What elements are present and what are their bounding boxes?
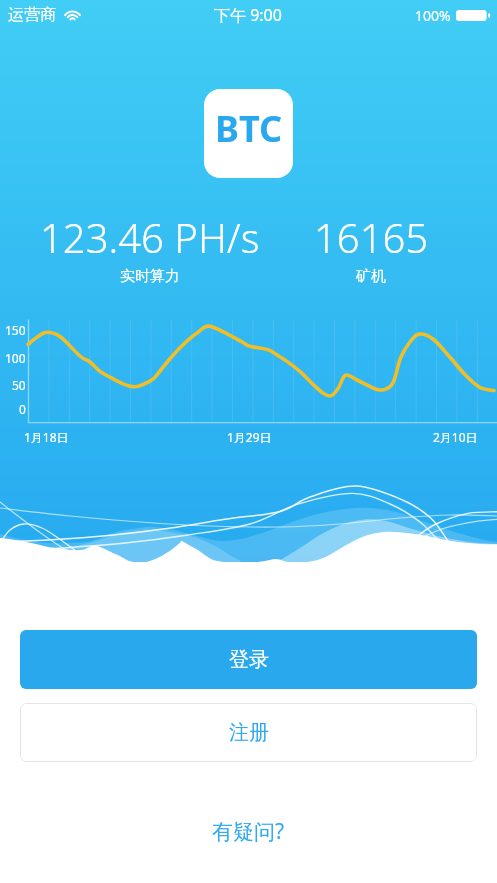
staticText: 有疑问? — [212, 817, 285, 846]
button[interactable]: 登录 — [20, 630, 477, 689]
staticText: 100 — [5, 350, 26, 366]
staticText: 50 — [12, 377, 26, 393]
staticText: 16165 — [314, 210, 429, 264]
staticText: 运营商 — [8, 5, 56, 25]
staticText: 2月10日 — [433, 429, 478, 445]
staticText: 矿机 — [356, 267, 386, 286]
button[interactable]: 有疑问? — [200, 811, 297, 852]
staticText: 100% — [415, 6, 451, 25]
staticText: 1月18日 — [24, 429, 69, 445]
staticText: 0 — [19, 401, 26, 417]
staticText: 1月29日 — [227, 429, 272, 445]
staticText: 注册 — [229, 720, 269, 745]
staticText: 150 — [5, 322, 26, 338]
button[interactable]: 注册 — [20, 703, 477, 762]
staticText: 登录 — [229, 647, 269, 672]
staticText: 实时算力 — [120, 267, 180, 286]
staticText: BTC — [215, 104, 283, 153]
staticText: 下午 9:00 — [214, 4, 282, 26]
staticText: 123.46 PH/s — [40, 210, 260, 264]
